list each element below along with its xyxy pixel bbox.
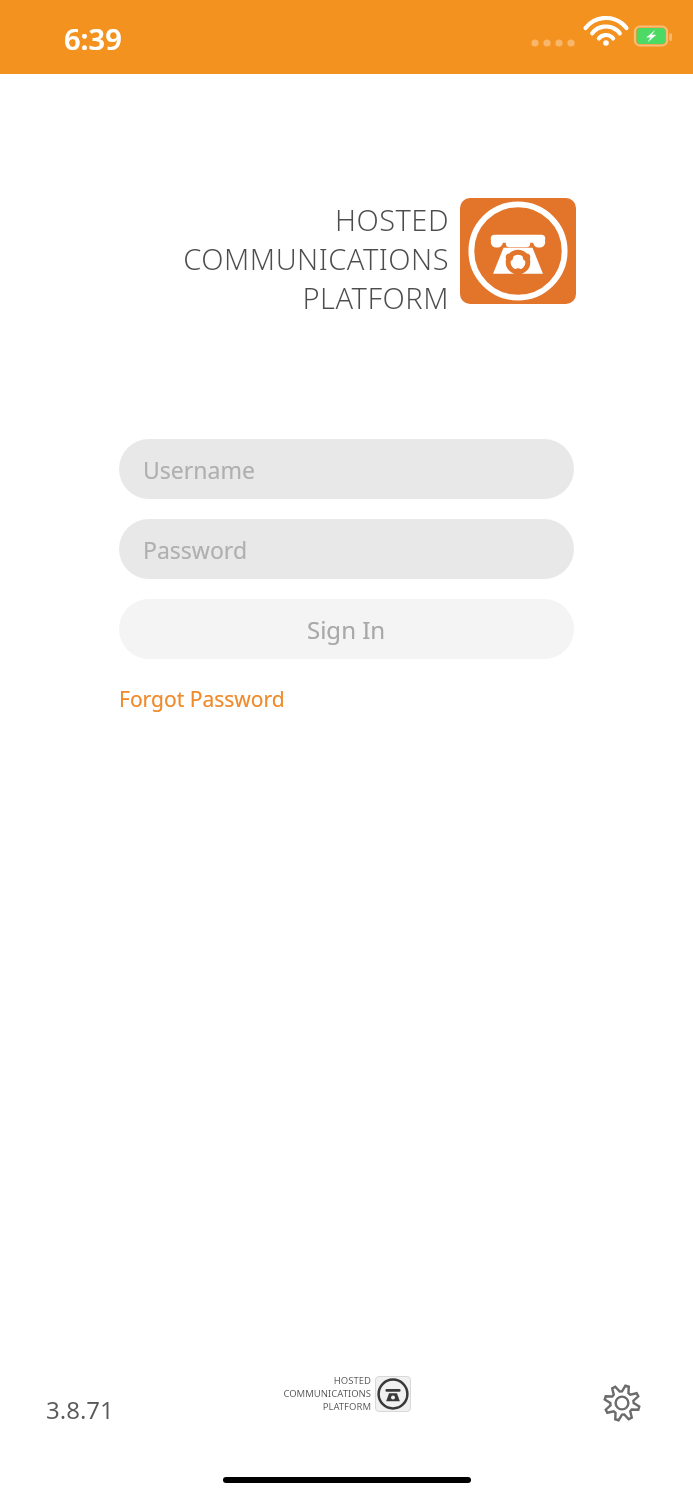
staticText: HOSTED [334, 200, 449, 239]
button[interactable]: Username [119, 439, 574, 499]
staticText: 3.8.71 [46, 1393, 114, 1426]
staticText: 6:39 [64, 19, 122, 58]
staticText: Forgot Password [119, 685, 285, 714]
button[interactable]: Settings [596, 1377, 648, 1429]
button[interactable]: Hosted Communications Platform [283, 1374, 411, 1413]
staticText: Sign In [307, 613, 386, 646]
button[interactable]: Sign In [119, 599, 574, 659]
button[interactable]: Password [119, 519, 574, 579]
staticText: COMMUNICATIONS [283, 1387, 371, 1400]
staticText: Password [143, 534, 248, 565]
staticText: COMMUNICATIONS [183, 239, 449, 278]
button[interactable]: Forgot Password [119, 681, 285, 718]
staticText: HOSTED [333, 1374, 371, 1387]
staticText: PLATFORM [322, 1400, 371, 1413]
staticText: Username [143, 454, 255, 485]
staticText: PLATFORM [302, 278, 449, 317]
